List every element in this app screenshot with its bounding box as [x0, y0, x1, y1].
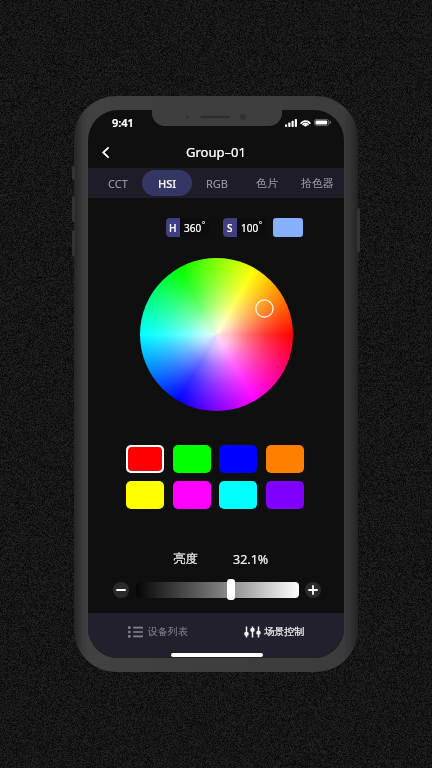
staticText: Group–01 — [186, 143, 246, 161]
staticText: 9:41 — [112, 115, 134, 130]
button[interactable]: Increase brightness — [305, 582, 321, 598]
staticText: RGB — [206, 176, 228, 191]
button[interactable]: Brightness slider — [136, 582, 299, 598]
button[interactable]: Preset color — [173, 481, 211, 509]
staticText: 色片 — [256, 176, 278, 190]
button[interactable]: Preset color — [173, 445, 211, 473]
button[interactable]: Preset color — [219, 481, 257, 509]
button[interactable]: 拾色器 — [292, 170, 342, 196]
staticText: H — [169, 221, 177, 235]
staticText: 360 — [184, 221, 202, 235]
staticText: 设备列表 — [148, 625, 188, 638]
button[interactable]: CCT — [93, 170, 142, 196]
button[interactable]: Color wheel — [140, 258, 293, 411]
button[interactable]: 色片 — [242, 170, 292, 196]
button[interactable]: Preset color — [266, 445, 304, 473]
button[interactable]: Preset color — [128, 447, 162, 471]
button[interactable]: Decrease brightness — [113, 582, 129, 598]
button[interactable]: 场景控制 — [245, 625, 304, 638]
staticText: 场景控制 — [264, 625, 304, 638]
button[interactable]: RGB — [192, 170, 242, 196]
button[interactable]: Preset color — [219, 445, 257, 473]
staticText: 亮度 — [173, 551, 198, 567]
button[interactable]: H — [166, 218, 209, 237]
staticText: HSI — [158, 176, 177, 191]
staticText: CCT — [108, 176, 128, 191]
staticText: S — [227, 221, 233, 235]
button[interactable]: 设备列表 — [128, 625, 188, 638]
staticText: ° — [202, 220, 205, 230]
button[interactable]: S — [223, 218, 266, 237]
button[interactable]: Preset color — [126, 481, 164, 509]
button[interactable]: Current color preview — [273, 218, 303, 237]
staticText: 拾色器 — [301, 176, 334, 190]
staticText: 100 — [241, 221, 259, 235]
staticText: ° — [259, 220, 262, 230]
button[interactable]: Back — [93, 136, 117, 168]
staticText: 32.1% — [233, 551, 269, 568]
button[interactable]: HSI — [142, 170, 192, 196]
button[interactable]: Preset color — [266, 481, 304, 509]
